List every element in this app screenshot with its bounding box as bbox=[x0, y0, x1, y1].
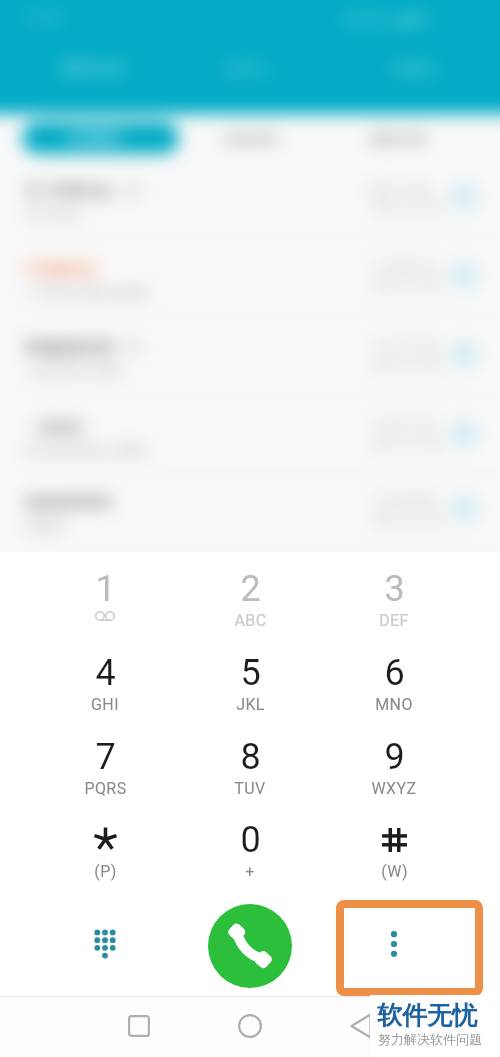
staticText: 李建国经理 bbox=[24, 337, 114, 360]
staticText: JKL bbox=[236, 695, 265, 714]
staticText: 骚扰拦截 bbox=[370, 131, 426, 149]
button[interactable]: Key 0 bbox=[183, 816, 317, 896]
staticText: + bbox=[245, 862, 255, 881]
button[interactable]: Key 3 bbox=[327, 565, 461, 645]
staticText: 努力解决软件问题 bbox=[378, 1031, 482, 1047]
staticText: 7 bbox=[95, 736, 116, 778]
staticText: MNO bbox=[375, 695, 413, 714]
button[interactable]: Key 1 bbox=[38, 565, 172, 645]
staticText: 1 bbox=[95, 568, 116, 610]
button[interactable]: Call bbox=[208, 904, 292, 988]
staticText: 未接来电 bbox=[222, 131, 278, 149]
button[interactable]: Key * bbox=[38, 816, 172, 896]
staticText: PQRS bbox=[84, 779, 127, 798]
staticText: 8 bbox=[240, 736, 261, 778]
staticText: ABC bbox=[234, 611, 267, 630]
button[interactable]: Key 6 bbox=[327, 649, 461, 729]
staticText: 3 bbox=[384, 568, 405, 610]
staticText: （未知） bbox=[24, 416, 96, 439]
staticText: 王小明先生 bbox=[24, 180, 114, 203]
staticText: 2 bbox=[240, 568, 261, 610]
staticText: 通话记录 bbox=[61, 59, 125, 79]
staticText: DEF bbox=[379, 611, 409, 630]
button[interactable]: Recent apps bbox=[109, 1002, 169, 1050]
staticText: 0 bbox=[240, 819, 261, 861]
staticText: 张婷婷同学 bbox=[24, 492, 114, 515]
staticText: 广东深圳 联通 未接通 bbox=[24, 284, 148, 300]
staticText: 5 bbox=[240, 652, 261, 694]
staticText: 软件无忧 bbox=[377, 1000, 477, 1031]
button[interactable]: Back bbox=[331, 1002, 391, 1050]
staticText: 上海 电信 已转接 bbox=[24, 363, 122, 379]
staticText: 6 bbox=[384, 652, 405, 694]
button[interactable]: Key 8 bbox=[183, 733, 317, 813]
button[interactable]: More options bbox=[337, 901, 482, 995]
staticText: 全部通话 bbox=[66, 130, 122, 148]
staticText: 联系人 bbox=[226, 60, 271, 79]
staticText: 中国移动 bbox=[24, 258, 96, 281]
staticText: ● ● ● ▂▄▆ ▮ bbox=[344, 10, 429, 25]
staticText: (W) bbox=[381, 862, 408, 881]
staticText: 收藏夹 bbox=[392, 60, 437, 79]
staticText: 未接通 bbox=[24, 518, 63, 534]
button[interactable]: Key # bbox=[327, 816, 461, 896]
button[interactable]: Key 2 bbox=[183, 565, 317, 645]
staticText: (P) bbox=[94, 862, 117, 881]
button[interactable]: Key 5 bbox=[183, 649, 317, 729]
staticText: GHI bbox=[91, 695, 119, 714]
button[interactable]: Key 7 bbox=[38, 733, 172, 813]
staticText: 4 bbox=[95, 652, 116, 694]
staticText: 9 bbox=[384, 736, 405, 778]
staticText: WXYZ bbox=[371, 779, 417, 798]
button[interactable]: Key 9 bbox=[327, 733, 461, 813]
button[interactable]: Show keypad bbox=[62, 903, 148, 985]
button[interactable]: Key 4 bbox=[38, 649, 172, 729]
button[interactable]: Home bbox=[220, 1002, 280, 1050]
staticText: TUV bbox=[234, 779, 266, 798]
